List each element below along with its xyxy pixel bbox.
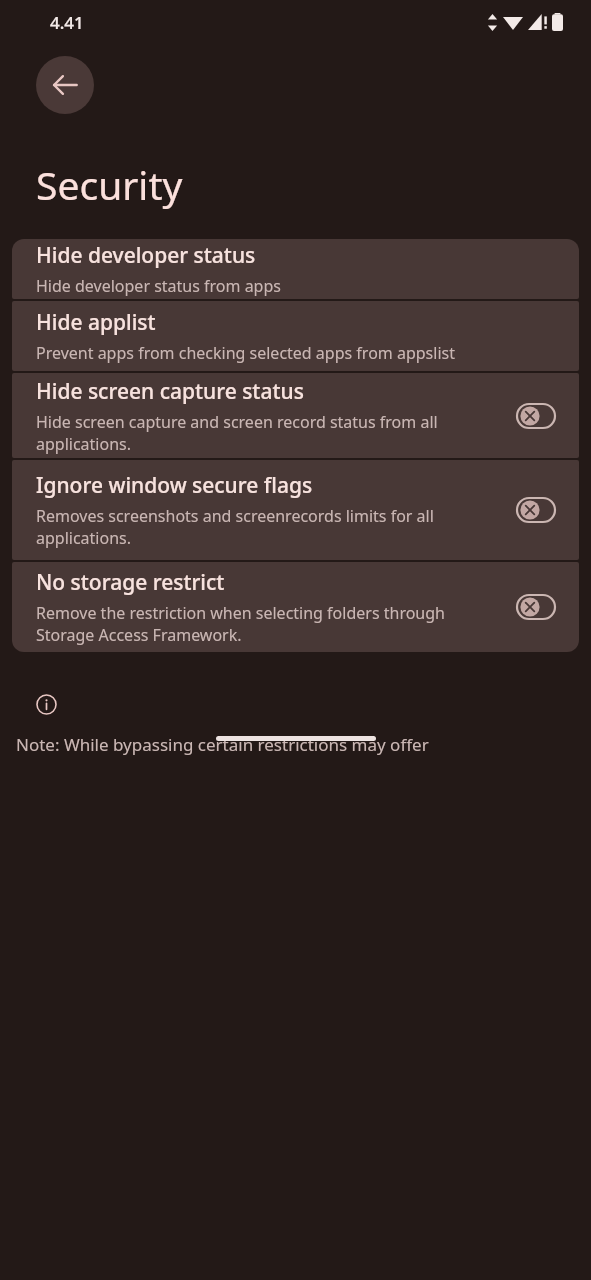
button[interactable]: Ignore window secure flags — [517, 498, 555, 522]
staticText: Removes screenshots and screenrecords li… — [36, 505, 483, 549]
staticText: Hide applist — [36, 308, 156, 337]
staticText: Hide screen capture status — [36, 377, 304, 406]
button[interactable]: Hide screen capture status — [12, 373, 579, 458]
button[interactable]: Hide screen capture status — [517, 404, 555, 428]
staticText: Prevent apps from checking selected apps… — [36, 342, 455, 364]
button[interactable]: No storage restrict — [517, 595, 555, 619]
staticText: Hide developer status — [36, 241, 256, 270]
button[interactable]: Information — [36, 694, 57, 715]
staticText: Note: While bypassing certain restrictio… — [16, 733, 429, 756]
button[interactable]: Ignore window secure flags — [12, 460, 579, 560]
staticText: No storage restrict — [36, 568, 225, 597]
button[interactable]: Back — [36, 56, 94, 114]
button[interactable]: No storage restrict — [12, 562, 579, 652]
staticText: Security — [36, 158, 183, 211]
staticText: Remove the restriction when selecting fo… — [36, 602, 483, 646]
staticText: Hide screen capture and screen record st… — [36, 411, 483, 455]
staticText: Hide developer status from apps — [36, 275, 281, 297]
staticText: 4.41 — [50, 11, 84, 34]
button[interactable]: Hide applist — [12, 301, 579, 371]
staticText: Ignore window secure flags — [36, 471, 313, 500]
button[interactable]: Hide developer status — [12, 239, 579, 299]
